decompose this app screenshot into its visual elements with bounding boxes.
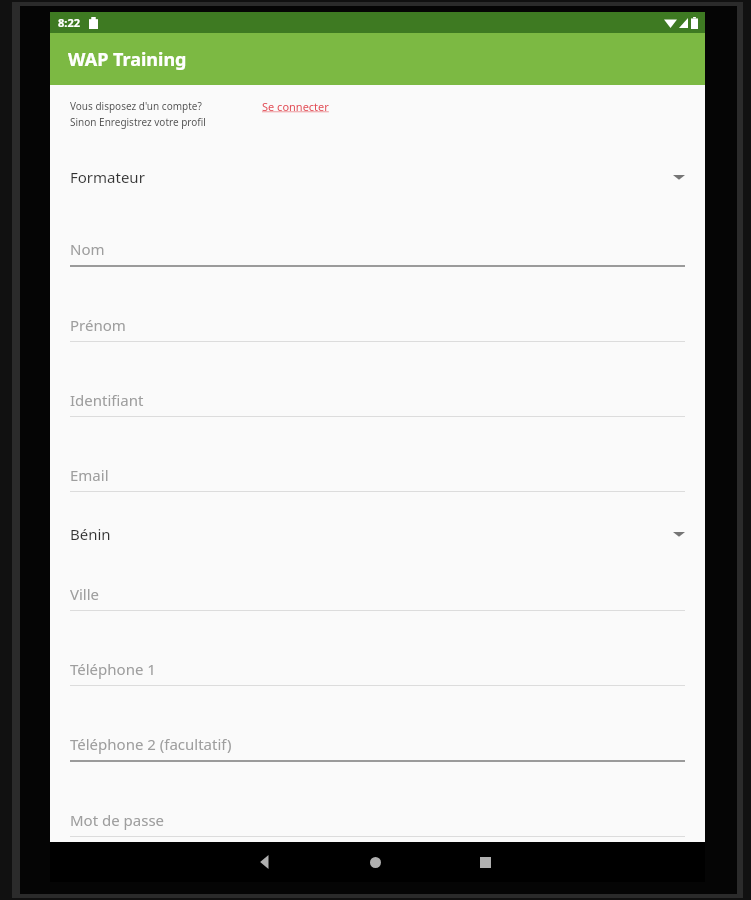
button[interactable]: Home: [356, 843, 394, 881]
button[interactable]: Téléphone 2 (facultatif): [70, 734, 685, 762]
staticText: Nom: [70, 239, 105, 259]
button[interactable]: Email: [70, 465, 685, 492]
staticText: Se connecter: [262, 99, 329, 114]
staticText: WAP Training: [68, 47, 187, 72]
staticText: Prénom: [70, 315, 126, 335]
button[interactable]: Formateur: [70, 167, 685, 187]
button[interactable]: Bénin: [70, 524, 685, 544]
button[interactable]: Prénom: [70, 315, 685, 342]
staticText: Mot de passe: [70, 810, 165, 830]
staticText: Identifiant: [70, 390, 144, 410]
staticText: Formateur: [70, 167, 145, 187]
staticText: 8:22: [58, 15, 80, 30]
button[interactable]: Se connecter: [262, 99, 329, 114]
button[interactable]: Mot de passe: [70, 810, 685, 837]
button[interactable]: Recent apps: [466, 843, 504, 881]
staticText: Email: [70, 465, 109, 485]
staticText: Vous disposez d'un compte?: [70, 99, 202, 113]
button[interactable]: Identifiant: [70, 390, 685, 417]
staticText: Téléphone 1: [70, 659, 156, 679]
button[interactable]: Back: [246, 843, 284, 881]
staticText: Téléphone 2 (facultatif): [70, 734, 232, 754]
button[interactable]: Nom: [70, 239, 685, 267]
button[interactable]: Téléphone 1: [70, 659, 685, 686]
staticText: Ville: [70, 584, 100, 604]
staticText: Sinon Enregistrez votre profil: [70, 115, 206, 129]
staticText: Bénin: [70, 524, 111, 544]
button[interactable]: Ville: [70, 584, 685, 611]
